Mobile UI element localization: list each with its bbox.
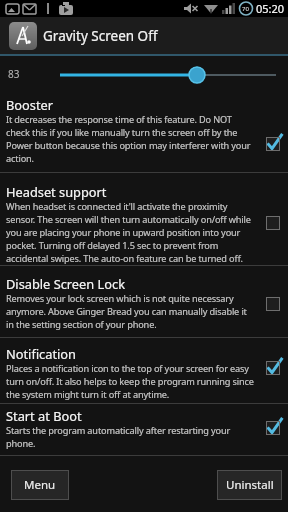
button[interactable]: Headset support bbox=[0, 173, 288, 265]
staticText: 70 bbox=[242, 5, 249, 13]
staticText: Menu bbox=[24, 477, 56, 493]
staticText: Start at Boot bbox=[6, 407, 82, 424]
button[interactable]: Booster bbox=[0, 90, 288, 172]
staticText: When headset is connected it'll activate… bbox=[6, 200, 251, 265]
staticText: Headset support bbox=[6, 183, 107, 200]
staticText: Places a notification icon to the top of… bbox=[6, 362, 254, 401]
button[interactable]: Start at Boot bbox=[0, 404, 288, 455]
staticText: Gravity Screen Off bbox=[43, 27, 158, 45]
staticText: It decreases the response time of this f… bbox=[6, 113, 251, 165]
staticText: 05:20 bbox=[256, 1, 285, 16]
staticText: Starts the program automatically after r… bbox=[6, 424, 231, 450]
staticText: Booster bbox=[6, 96, 54, 113]
staticText: Disable Screen Lock bbox=[6, 275, 125, 292]
button[interactable]: Menu bbox=[11, 470, 69, 500]
button[interactable]: Notification bbox=[0, 338, 288, 403]
button[interactable]: Disable Screen Lock bbox=[0, 266, 288, 337]
button[interactable]: Uninstall bbox=[217, 470, 282, 500]
staticText: 83 bbox=[8, 67, 20, 81]
staticText: Uninstall bbox=[226, 477, 274, 493]
staticText: Notification bbox=[6, 345, 76, 362]
staticText: Removes your lock screen which is not qu… bbox=[6, 292, 247, 331]
